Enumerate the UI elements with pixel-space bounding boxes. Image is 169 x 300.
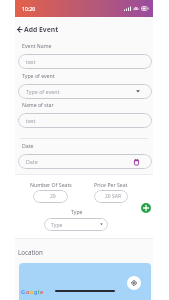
staticText: 20 — [50, 193, 56, 200]
button[interactable]: text — [18, 113, 152, 128]
other: Back — [17, 26, 22, 33]
staticText: 20 SAR — [105, 193, 122, 200]
staticText: Type — [71, 208, 83, 215]
button[interactable]: My location — [127, 276, 141, 290]
staticText: Type of event — [22, 72, 55, 79]
staticText: Date — [22, 142, 34, 149]
button[interactable]: Add — [141, 203, 151, 213]
staticText: Number Of Seats — [30, 181, 72, 188]
button[interactable]: text — [18, 54, 152, 69]
staticText: Price Per Seat — [94, 181, 128, 188]
button[interactable]: 20 — [33, 190, 68, 203]
staticText: e — [40, 288, 44, 296]
button[interactable]: 20 SAR — [94, 190, 128, 203]
button[interactable]: Type of event — [18, 84, 152, 99]
staticText: Location — [18, 248, 43, 256]
staticText: g — [34, 288, 38, 296]
staticText: Add Event — [24, 25, 59, 34]
staticText: o — [30, 288, 34, 296]
staticText: Type of event — [26, 88, 142, 95]
staticText: text — [26, 58, 148, 65]
staticText: Name of star — [22, 101, 54, 108]
staticText: Event Name — [22, 42, 52, 49]
staticText: text — [26, 117, 148, 124]
staticText: Date — [26, 158, 143, 165]
staticText: Type — [51, 221, 99, 228]
other: Pick date — [134, 159, 139, 165]
button[interactable]: Type — [44, 218, 108, 231]
staticText: 10:20 — [22, 5, 36, 12]
button[interactable]: Date — [18, 154, 152, 169]
staticText: o — [26, 288, 30, 296]
staticText: G — [21, 288, 26, 296]
button[interactable]: Back — [16, 24, 60, 35]
staticText: l — [38, 288, 40, 296]
